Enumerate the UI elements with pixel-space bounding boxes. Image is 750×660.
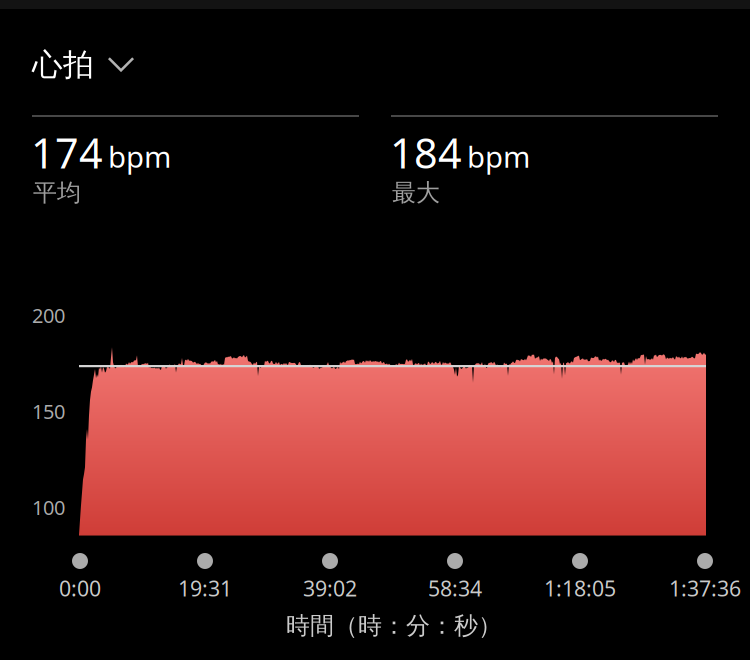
staticText: 1:18:05 — [544, 574, 616, 602]
button[interactable]: 心拍 — [32, 46, 140, 84]
staticText: 174 — [31, 125, 103, 180]
staticText: 200 — [32, 302, 65, 329]
staticText: 150 — [32, 398, 65, 425]
staticText: 心拍 — [32, 46, 94, 84]
staticText: 0:00 — [59, 574, 101, 602]
staticText: 39:02 — [303, 574, 357, 602]
staticText: 平均 — [33, 178, 81, 207]
staticText: bpm — [467, 137, 530, 176]
staticText: 58:34 — [428, 574, 482, 602]
staticText: bpm — [108, 137, 171, 176]
staticText: 最大 — [392, 178, 440, 207]
staticText: 時間（時：分：秒） — [286, 611, 502, 640]
staticText: 1:37:36 — [669, 574, 741, 602]
staticText: 184 — [390, 125, 462, 180]
staticText: 100 — [32, 494, 65, 521]
staticText: 19:31 — [178, 574, 232, 602]
